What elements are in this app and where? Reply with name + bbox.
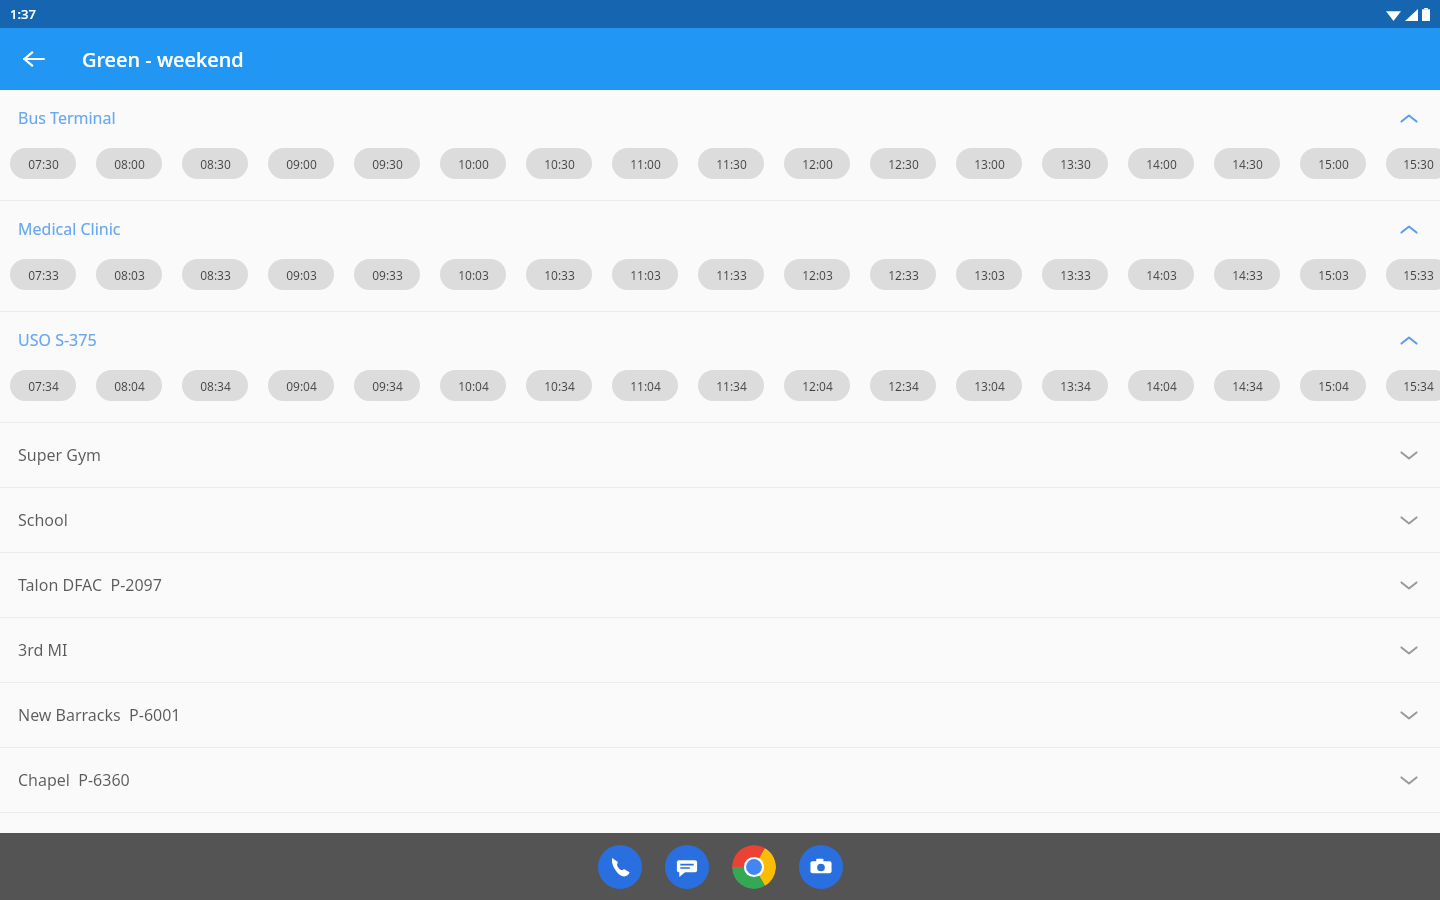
button[interactable]: 10:33 xyxy=(526,259,592,290)
staticText: 14:04 xyxy=(1146,378,1177,394)
staticText: Chapel P-6360 xyxy=(18,769,130,791)
button[interactable]: 08:30 xyxy=(182,148,248,179)
button[interactable]: 08:33 xyxy=(182,259,248,290)
button[interactable]: 14:04 xyxy=(1128,370,1194,401)
staticText: 07:30 xyxy=(28,156,59,172)
button[interactable]: 11:30 xyxy=(698,148,764,179)
staticText: 13:34 xyxy=(1060,378,1091,394)
staticText: 09:34 xyxy=(372,378,403,394)
staticText: 10:04 xyxy=(458,378,489,394)
button[interactable]: 08:34 xyxy=(182,370,248,401)
staticText: 08:00 xyxy=(114,156,145,172)
staticText: 11:33 xyxy=(716,267,747,283)
button[interactable]: 15:33 xyxy=(1386,259,1440,290)
button[interactable]: USO S-375 xyxy=(0,312,1440,367)
staticText: 10:34 xyxy=(544,378,575,394)
button[interactable]: Phone xyxy=(598,845,642,889)
staticText: 10:00 xyxy=(458,156,489,172)
button[interactable]: Bus Terminal xyxy=(0,90,1440,145)
button[interactable]: 14:30 xyxy=(1214,148,1280,179)
button[interactable]: Talon DFAC P-2097 xyxy=(0,553,1440,617)
button[interactable]: 09:34 xyxy=(354,370,420,401)
staticText: 12:34 xyxy=(888,378,919,394)
staticText: 13:03 xyxy=(974,267,1005,283)
button[interactable]: 13:30 xyxy=(1042,148,1108,179)
button[interactable]: 13:34 xyxy=(1042,370,1108,401)
button[interactable]: 14:03 xyxy=(1128,259,1194,290)
button[interactable]: 3rd MI xyxy=(0,618,1440,682)
staticText: 08:34 xyxy=(200,378,231,394)
button[interactable]: Camera xyxy=(799,845,843,889)
button[interactable]: 15:34 xyxy=(1386,370,1440,401)
staticText: 11:34 xyxy=(716,378,747,394)
button[interactable]: 12:03 xyxy=(784,259,850,290)
staticText: 10:33 xyxy=(544,267,575,283)
staticText: Medical Clinic xyxy=(18,218,121,240)
button[interactable]: 11:33 xyxy=(698,259,764,290)
button[interactable]: Chapel P-6360 xyxy=(0,748,1440,812)
button[interactable]: 08:04 xyxy=(96,370,162,401)
button[interactable]: Back xyxy=(12,37,56,81)
button[interactable]: 12:30 xyxy=(870,148,936,179)
staticText: 08:33 xyxy=(200,267,231,283)
button[interactable]: Chrome xyxy=(732,845,776,889)
button[interactable]: 14:00 xyxy=(1128,148,1194,179)
button[interactable]: 10:04 xyxy=(440,370,506,401)
button[interactable]: 09:04 xyxy=(268,370,334,401)
staticText: 09:03 xyxy=(286,267,317,283)
button[interactable]: 15:00 xyxy=(1300,148,1366,179)
button[interactable]: New Barracks P-6001 xyxy=(0,683,1440,747)
button[interactable]: 15:30 xyxy=(1386,148,1440,179)
button[interactable]: 13:00 xyxy=(956,148,1022,179)
button[interactable]: 12:04 xyxy=(784,370,850,401)
staticText: 15:34 xyxy=(1403,378,1434,394)
staticText: 15:04 xyxy=(1318,378,1349,394)
button[interactable]: Super Gym xyxy=(0,423,1440,487)
button[interactable]: 15:03 xyxy=(1300,259,1366,290)
button[interactable]: 10:03 xyxy=(440,259,506,290)
button[interactable]: 11:34 xyxy=(698,370,764,401)
staticText: 09:30 xyxy=(372,156,403,172)
button[interactable]: 14:34 xyxy=(1214,370,1280,401)
button[interactable]: 08:00 xyxy=(96,148,162,179)
staticText: 13:30 xyxy=(1060,156,1091,172)
button[interactable]: Messages xyxy=(665,845,709,889)
button[interactable]: 11:03 xyxy=(612,259,678,290)
staticText: 09:00 xyxy=(286,156,317,172)
staticText: 12:30 xyxy=(888,156,919,172)
button[interactable]: 15:04 xyxy=(1300,370,1366,401)
staticText: 10:03 xyxy=(458,267,489,283)
staticText: 14:30 xyxy=(1232,156,1263,172)
button[interactable]: 11:00 xyxy=(612,148,678,179)
staticText: 15:00 xyxy=(1318,156,1349,172)
button[interactable]: 12:00 xyxy=(784,148,850,179)
button[interactable]: 13:33 xyxy=(1042,259,1108,290)
button[interactable]: 09:33 xyxy=(354,259,420,290)
button[interactable]: 07:34 xyxy=(10,370,76,401)
staticText: Bus Terminal xyxy=(18,107,116,129)
staticText: School xyxy=(18,509,68,531)
button[interactable]: 07:33 xyxy=(10,259,76,290)
button[interactable]: 08:03 xyxy=(96,259,162,290)
button[interactable]: 10:34 xyxy=(526,370,592,401)
staticText: 12:04 xyxy=(802,378,833,394)
button[interactable]: 09:30 xyxy=(354,148,420,179)
button[interactable]: 09:00 xyxy=(268,148,334,179)
staticText: 12:00 xyxy=(802,156,833,172)
button[interactable]: 07:30 xyxy=(10,148,76,179)
button[interactable]: 12:33 xyxy=(870,259,936,290)
staticText: New Barracks P-6001 xyxy=(18,704,181,726)
button[interactable]: 12:34 xyxy=(870,370,936,401)
staticText: 09:04 xyxy=(286,378,317,394)
button[interactable]: 13:03 xyxy=(956,259,1022,290)
button[interactable]: 14:33 xyxy=(1214,259,1280,290)
button[interactable]: 10:00 xyxy=(440,148,506,179)
button[interactable]: 13:04 xyxy=(956,370,1022,401)
staticText: USO S-375 xyxy=(18,329,97,351)
button[interactable]: 11:04 xyxy=(612,370,678,401)
button[interactable]: 10:30 xyxy=(526,148,592,179)
staticText: 15:03 xyxy=(1318,267,1349,283)
button[interactable]: Medical Clinic xyxy=(0,201,1440,256)
button[interactable]: 09:03 xyxy=(268,259,334,290)
button[interactable]: School xyxy=(0,488,1440,552)
